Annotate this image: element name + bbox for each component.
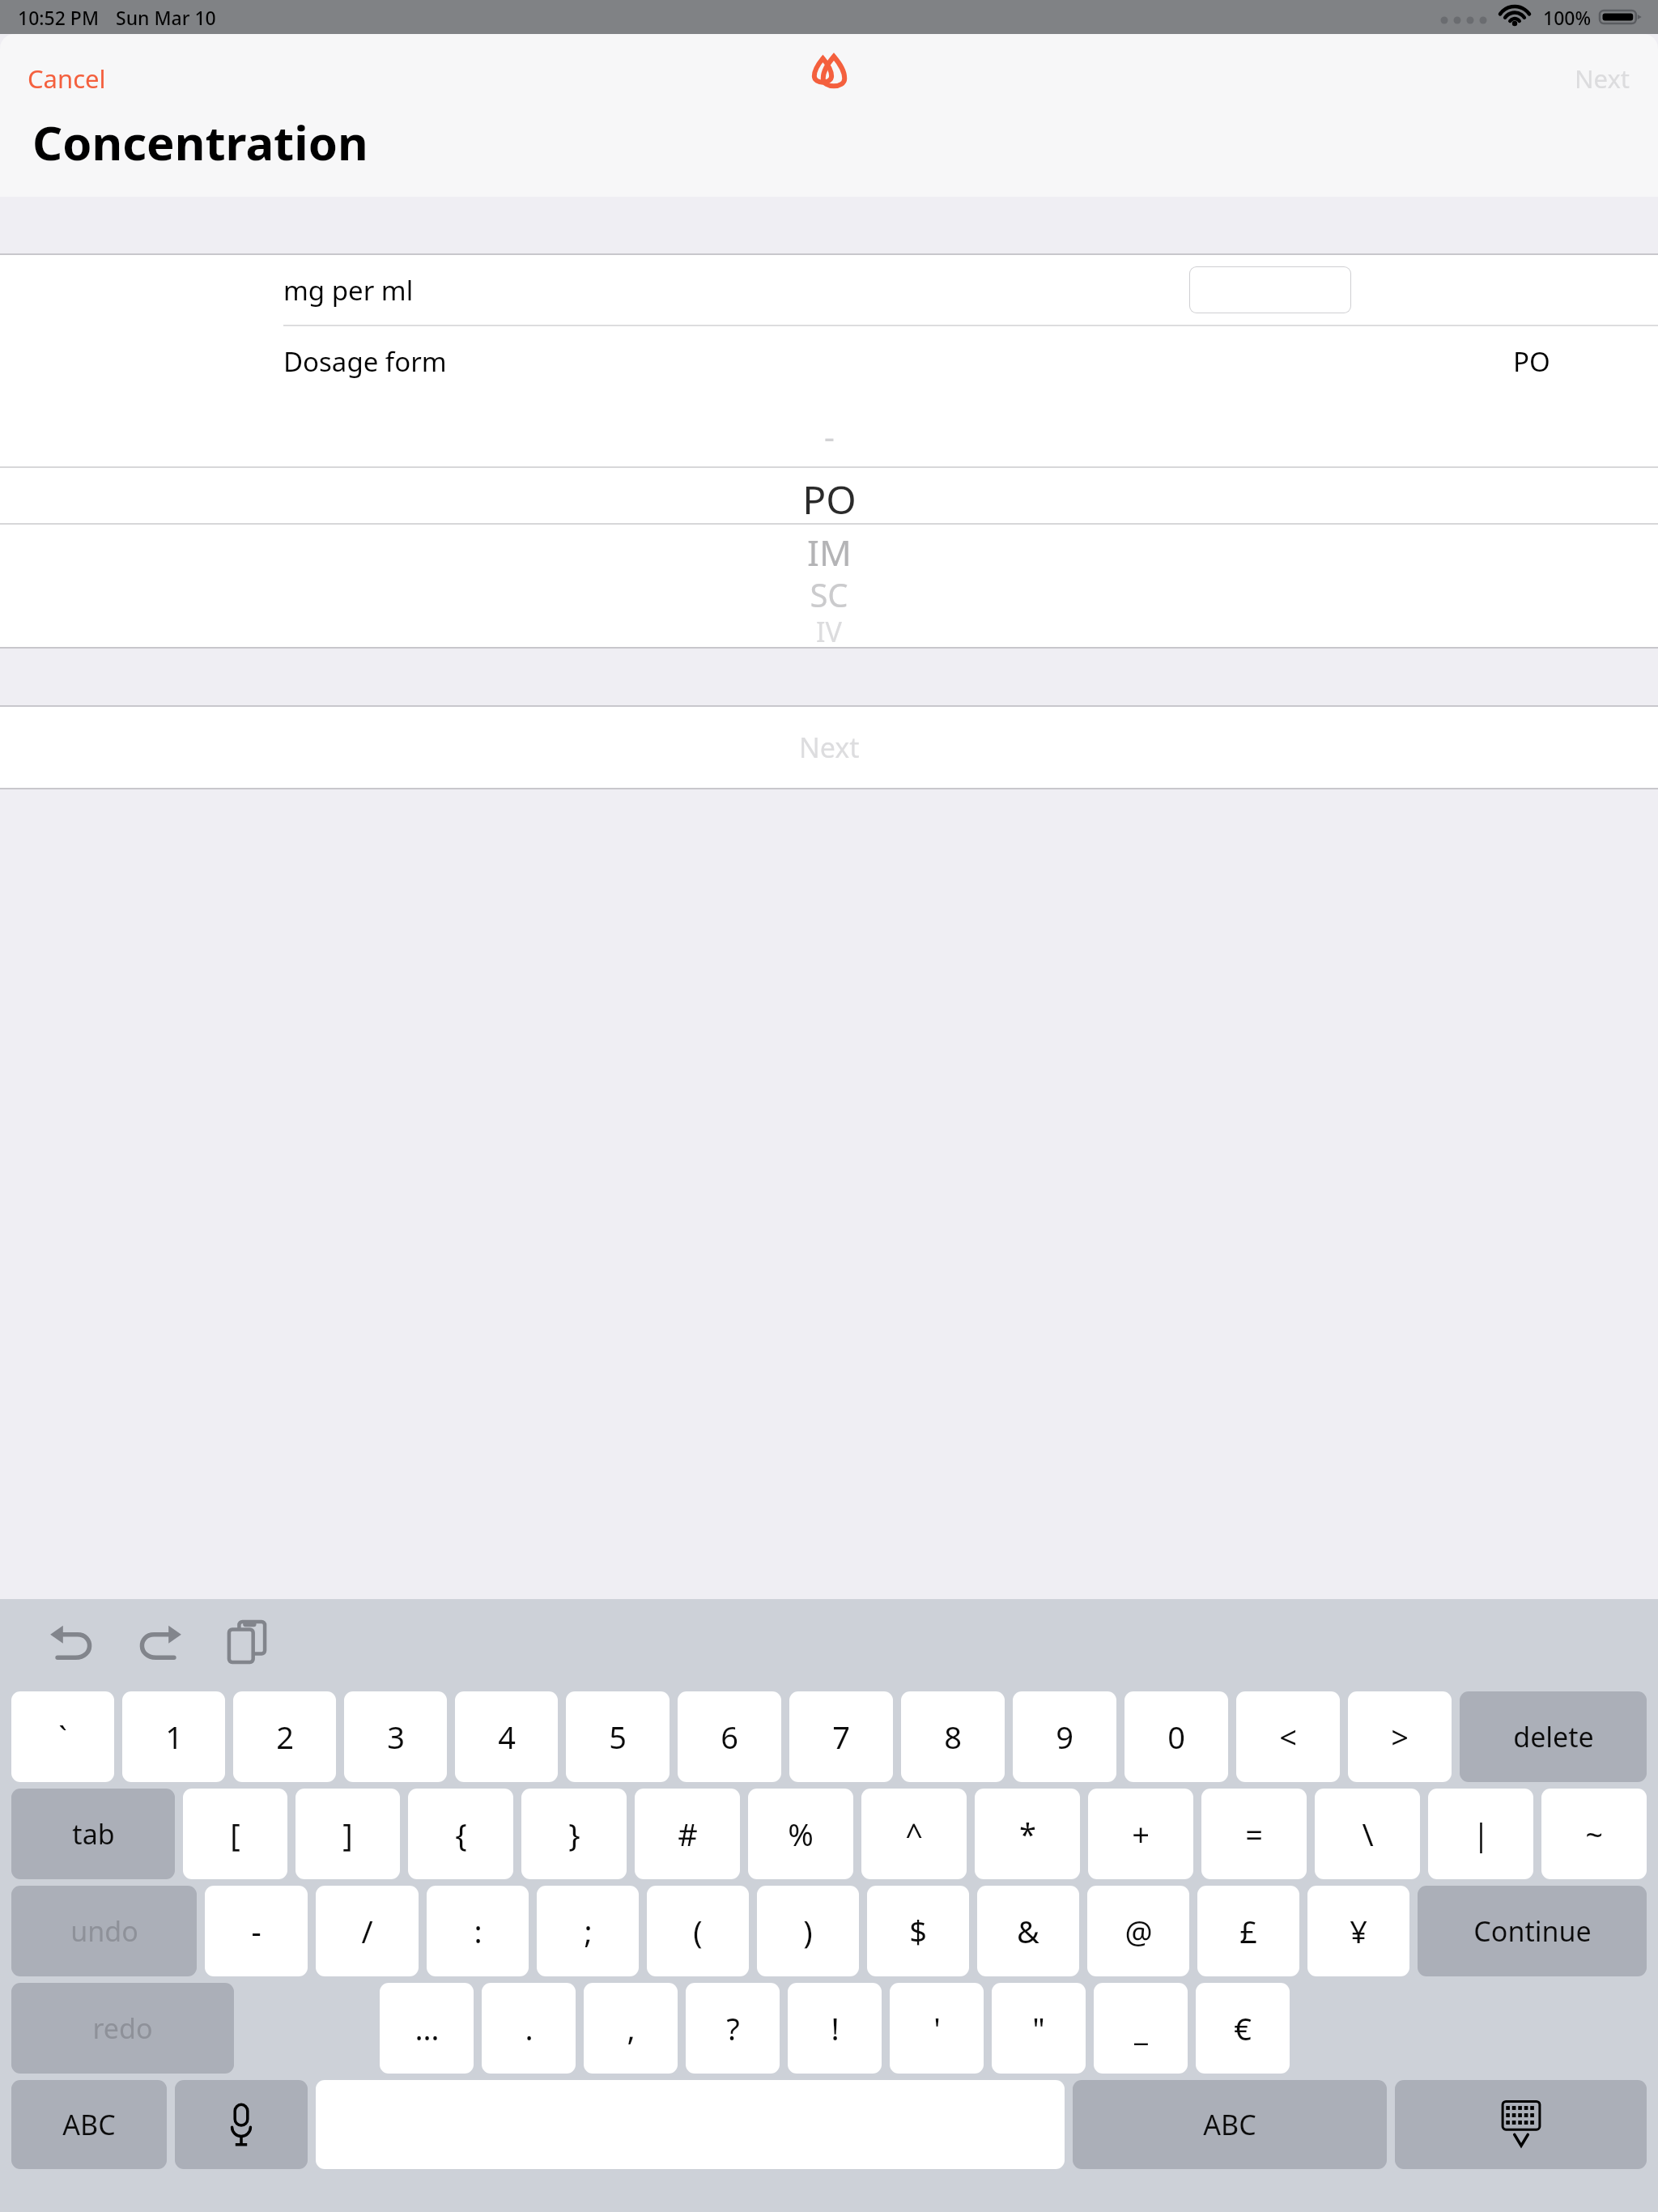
button[interactable]: Undo bbox=[37, 1607, 107, 1677]
button[interactable]: ; bbox=[537, 1886, 639, 1976]
staticText: 9 bbox=[1056, 1716, 1073, 1758]
staticText: 6 bbox=[721, 1716, 738, 1758]
button[interactable]: ! bbox=[788, 1983, 882, 2074]
button[interactable]: @ bbox=[1087, 1886, 1189, 1976]
button[interactable]: 3 bbox=[344, 1691, 447, 1782]
button[interactable]: Dosage form bbox=[0, 326, 1658, 396]
button[interactable]: 6 bbox=[678, 1691, 781, 1782]
button[interactable]: : bbox=[427, 1886, 529, 1976]
button[interactable]: ) bbox=[757, 1886, 859, 1976]
button[interactable]: ABC bbox=[11, 2080, 167, 2169]
button[interactable]: ' bbox=[890, 1983, 984, 2074]
button[interactable]: [ bbox=[183, 1789, 287, 1879]
button[interactable]: ] bbox=[295, 1789, 400, 1879]
staticText: Concentration bbox=[32, 110, 368, 174]
button[interactable]: - bbox=[205, 1886, 308, 1976]
button[interactable]: 0 bbox=[1124, 1691, 1228, 1782]
staticText: ] bbox=[342, 1813, 353, 1855]
staticText: 100% bbox=[1543, 5, 1592, 30]
button[interactable]: 7 bbox=[789, 1691, 893, 1782]
staticText: - bbox=[824, 414, 835, 457]
button[interactable]: Cancel bbox=[10, 52, 124, 105]
button[interactable]: 5 bbox=[566, 1691, 670, 1782]
staticText: , bbox=[627, 2007, 636, 2049]
staticText: ) bbox=[803, 1910, 813, 1952]
button[interactable]: Dictate bbox=[175, 2080, 308, 2169]
button[interactable]: Next bbox=[1557, 52, 1648, 105]
staticText: Sun Mar 10 bbox=[116, 5, 216, 30]
button[interactable]: redo bbox=[11, 1983, 234, 2074]
button[interactable]: 1 bbox=[122, 1691, 225, 1782]
button[interactable]: / bbox=[316, 1886, 419, 1976]
button[interactable]: ? bbox=[686, 1983, 780, 2074]
button[interactable]: * bbox=[975, 1789, 1080, 1879]
button[interactable]: € bbox=[1196, 1983, 1290, 2074]
staticText: } bbox=[568, 1813, 580, 1855]
button[interactable]: Paste bbox=[212, 1607, 282, 1677]
staticText: & bbox=[1017, 1910, 1039, 1952]
button[interactable]: … bbox=[380, 1983, 474, 2074]
button[interactable]: 8 bbox=[901, 1691, 1005, 1782]
button[interactable]: . bbox=[482, 1983, 576, 2074]
button[interactable]: # bbox=[635, 1789, 740, 1879]
button[interactable]: £ bbox=[1197, 1886, 1299, 1976]
button[interactable]: ` bbox=[11, 1691, 114, 1782]
staticText: ^ bbox=[905, 1813, 923, 1855]
staticText: % bbox=[788, 1813, 814, 1855]
button[interactable]: & bbox=[977, 1886, 1079, 1976]
button[interactable]: IV bbox=[816, 613, 842, 647]
staticText: _ bbox=[1134, 2007, 1148, 2049]
button[interactable]: ~ bbox=[1541, 1789, 1647, 1879]
button[interactable]: < bbox=[1236, 1691, 1340, 1782]
button[interactable]: + bbox=[1088, 1789, 1193, 1879]
button[interactable]: Space bbox=[316, 2080, 1065, 2169]
button[interactable]: ABC bbox=[1073, 2080, 1387, 2169]
button[interactable]: $ bbox=[867, 1886, 969, 1976]
button[interactable]: ¥ bbox=[1307, 1886, 1409, 1976]
staticText: [ bbox=[230, 1813, 240, 1855]
staticText: @ bbox=[1124, 1910, 1153, 1952]
button[interactable]: tab bbox=[11, 1789, 175, 1879]
button[interactable]: = bbox=[1201, 1789, 1307, 1879]
staticText: 4 bbox=[498, 1716, 516, 1758]
button[interactable]: > bbox=[1348, 1691, 1452, 1782]
button[interactable]: Hide keyboard bbox=[1395, 2080, 1647, 2169]
staticText: : bbox=[474, 1910, 483, 1952]
button[interactable]: delete bbox=[1460, 1691, 1647, 1782]
staticText: ; bbox=[584, 1910, 593, 1952]
staticText: 2 bbox=[276, 1716, 294, 1758]
staticText: Dosage form bbox=[283, 343, 447, 380]
button[interactable]: " bbox=[992, 1983, 1086, 2074]
button[interactable]: % bbox=[748, 1789, 853, 1879]
staticText: 0 bbox=[1167, 1716, 1185, 1758]
button[interactable]: 2 bbox=[233, 1691, 336, 1782]
staticText: … bbox=[414, 2007, 440, 2049]
button[interactable]: { bbox=[408, 1789, 513, 1879]
button[interactable]: Redo bbox=[125, 1607, 194, 1677]
button[interactable]: ( bbox=[647, 1886, 749, 1976]
button[interactable]: 9 bbox=[1013, 1691, 1116, 1782]
button[interactable]: } bbox=[521, 1789, 627, 1879]
staticText: = bbox=[1245, 1813, 1263, 1855]
staticText: - bbox=[251, 1910, 261, 1952]
button[interactable]: 4 bbox=[455, 1691, 558, 1782]
button[interactable]: IM bbox=[807, 528, 852, 576]
button[interactable]: _ bbox=[1094, 1983, 1188, 2074]
staticText: mg per ml bbox=[283, 272, 414, 308]
staticText: 8 bbox=[944, 1716, 962, 1758]
button[interactable]: ^ bbox=[861, 1789, 967, 1879]
staticText: \ bbox=[1362, 1813, 1374, 1855]
button[interactable]: PO bbox=[802, 473, 857, 525]
button[interactable]: Continue bbox=[1418, 1886, 1647, 1976]
staticText: # bbox=[678, 1813, 698, 1855]
staticText: PO bbox=[1513, 343, 1550, 380]
staticText: ABC bbox=[62, 2106, 116, 2143]
button[interactable]: , bbox=[584, 1983, 678, 2074]
staticText: ¥ bbox=[1350, 1910, 1367, 1952]
button[interactable]: | bbox=[1428, 1789, 1533, 1879]
button[interactable]: undo bbox=[11, 1886, 197, 1976]
button[interactable]: mg per ml bbox=[0, 255, 1658, 325]
button[interactable]: SC bbox=[810, 572, 848, 616]
button[interactable]: \ bbox=[1315, 1789, 1420, 1879]
